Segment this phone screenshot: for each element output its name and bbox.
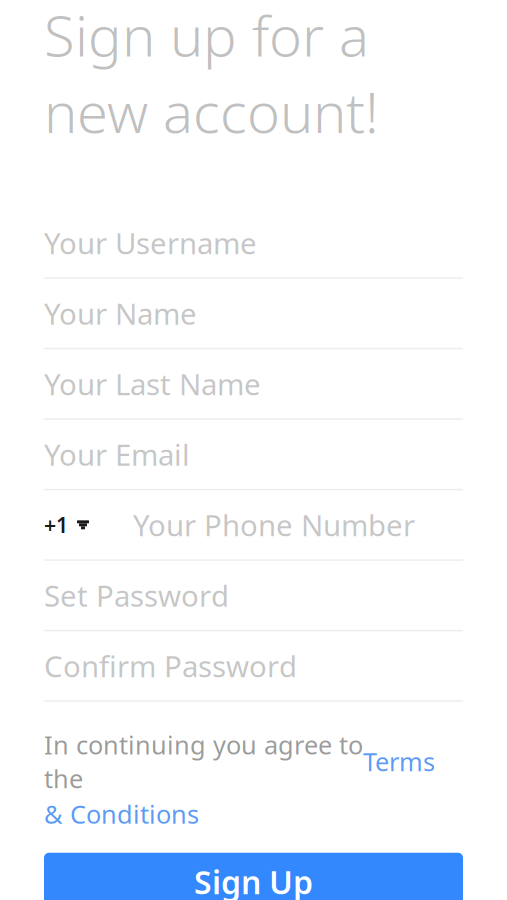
button[interactable]: Your Last Name [44,349,463,420]
button[interactable]: Confirm Password [44,631,463,702]
staticText: Your Last Name [44,364,261,403]
staticText: Your Email [44,435,190,474]
staticText: new account! [44,74,379,148]
staticText: Your Name [44,294,197,333]
staticText: +1 [44,511,68,539]
staticText: Your Username [44,223,257,262]
staticText: Sign Up [194,860,313,900]
staticText: Your Phone Number [133,505,415,544]
button[interactable]: Your Email [44,420,463,490]
staticText: In continuing you agree to the [44,728,363,795]
staticText: Terms [363,745,435,778]
button[interactable]: Your Name [44,279,463,349]
staticText: Confirm Password [44,646,297,685]
button[interactable]: In continuing you agree to the [0,702,507,831]
button[interactable]: Sign Up [44,853,463,900]
staticText: & Conditions [44,797,199,831]
staticText: Sign up for a [44,0,369,72]
staticText: Set Password [44,576,229,615]
button[interactable]: +1 [44,490,463,561]
button[interactable]: Set Password [44,561,463,631]
button[interactable]: Your Username [44,208,463,279]
